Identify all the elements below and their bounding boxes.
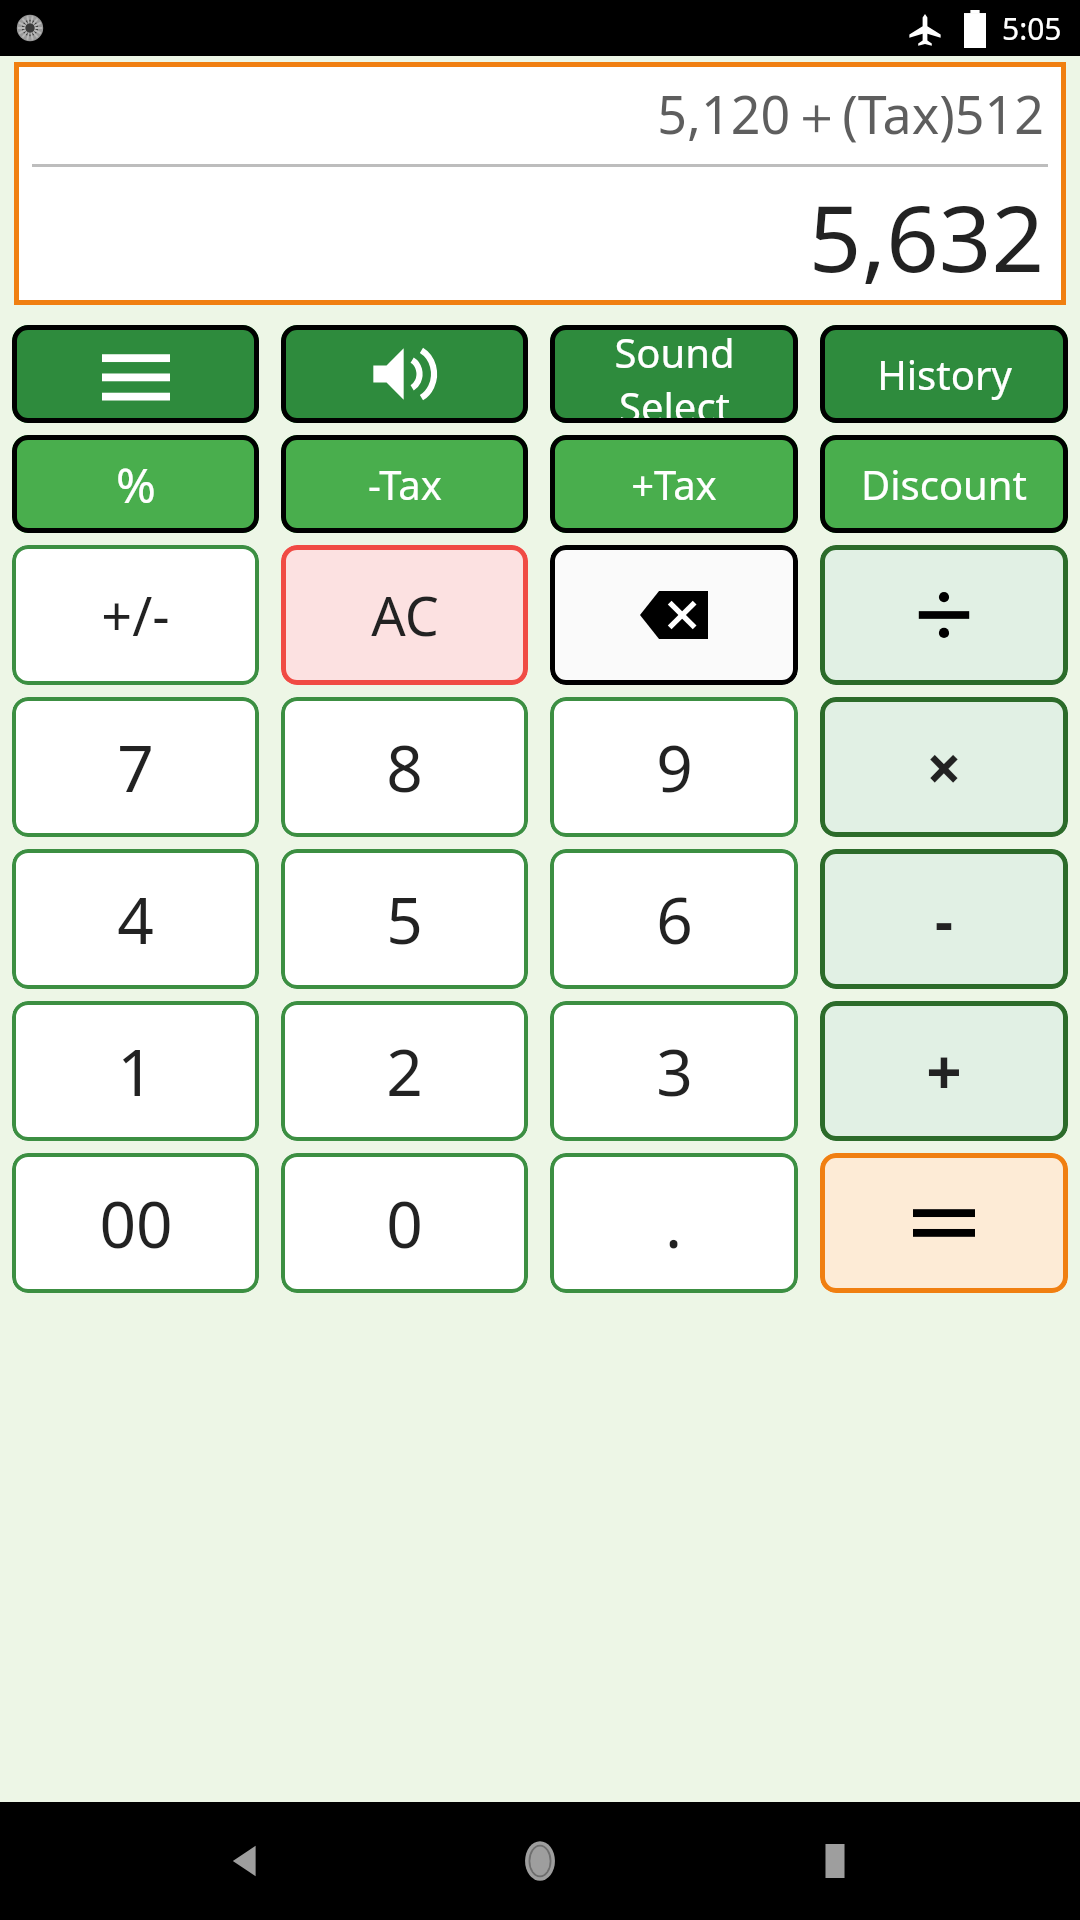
staticText: . — [665, 1180, 683, 1267]
staticText: Sound Select — [614, 325, 735, 423]
button[interactable]: -Tax — [281, 435, 528, 533]
button[interactable]: Divide — [820, 545, 1068, 685]
staticText: 6 — [656, 876, 693, 963]
button[interactable]: Sound — [281, 325, 528, 423]
staticText: - — [935, 881, 953, 957]
button[interactable]: 6 — [550, 849, 798, 989]
button[interactable]: 8 — [281, 697, 528, 837]
button[interactable]: Recents — [785, 1811, 885, 1911]
button[interactable]: 9 — [550, 697, 798, 837]
staticText: + — [926, 1029, 962, 1113]
button[interactable]: 3 — [550, 1001, 798, 1141]
button[interactable]: Sound Select — [550, 325, 798, 423]
staticText: 9 — [656, 724, 693, 811]
staticText: +Tax — [631, 457, 717, 511]
button[interactable]: AC — [281, 545, 528, 685]
button[interactable]: 5 — [281, 849, 528, 989]
staticText: 3 — [656, 1028, 693, 1115]
staticText: 2 — [386, 1028, 423, 1115]
staticText: × — [926, 725, 962, 809]
staticText: 5 — [386, 876, 423, 963]
button[interactable]: Equals — [820, 1153, 1068, 1293]
staticText: 00 — [99, 1180, 173, 1267]
button[interactable]: % — [12, 435, 259, 533]
staticText: 5,120＋(Tax)512 — [657, 78, 1044, 149]
staticText: % — [116, 452, 156, 517]
staticText: 0 — [386, 1180, 423, 1267]
staticText: 1 — [117, 1028, 154, 1115]
button[interactable]: + — [820, 1001, 1068, 1141]
button[interactable]: Menu — [12, 325, 259, 423]
button[interactable]: 7 — [12, 697, 259, 837]
staticText: AC — [371, 578, 439, 652]
button[interactable]: +Tax — [550, 435, 798, 533]
button[interactable]: +/- — [12, 545, 259, 685]
staticText: +/- — [101, 578, 170, 652]
button[interactable]: 4 — [12, 849, 259, 989]
staticText: Discount — [861, 457, 1027, 511]
button[interactable]: Back — [195, 1811, 295, 1911]
button[interactable]: - — [820, 849, 1068, 989]
button[interactable]: 0 — [281, 1153, 528, 1293]
staticText: 7 — [117, 724, 154, 811]
staticText: History — [877, 347, 1012, 401]
button[interactable]: 00 — [12, 1153, 259, 1293]
button[interactable]: Discount — [820, 435, 1068, 533]
button[interactable]: 1 — [12, 1001, 259, 1141]
staticText: 8 — [386, 724, 423, 811]
button[interactable]: . — [550, 1153, 798, 1293]
staticText: 4 — [117, 876, 154, 963]
button[interactable]: × — [820, 697, 1068, 837]
button[interactable]: Backspace — [550, 545, 798, 685]
button[interactable]: History — [820, 325, 1068, 423]
staticText: 5:05 — [1002, 8, 1062, 49]
button[interactable]: 2 — [281, 1001, 528, 1141]
staticText: -Tax — [368, 457, 442, 511]
button[interactable]: Home — [490, 1811, 590, 1911]
staticText: 5,632 — [808, 174, 1044, 299]
